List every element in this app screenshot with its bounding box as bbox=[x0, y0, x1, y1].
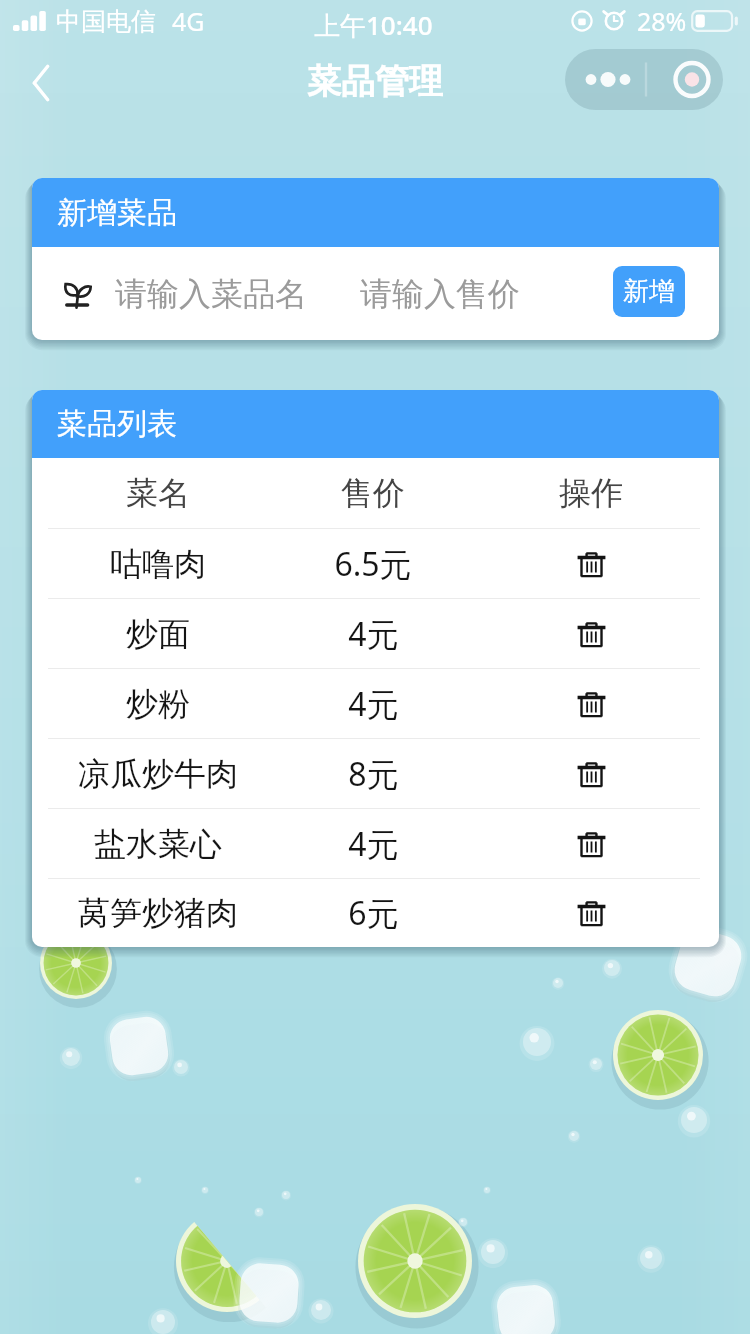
staticText: 菜品管理 bbox=[307, 60, 443, 103]
staticText: 4元 bbox=[348, 822, 399, 866]
staticText: 请输入菜品名 bbox=[115, 274, 307, 314]
staticText: 请输入售价 bbox=[360, 274, 520, 314]
staticText: 凉瓜炒牛肉 bbox=[78, 754, 238, 794]
button[interactable]: 炒面 bbox=[32, 599, 719, 668]
staticText: 4元 bbox=[348, 682, 399, 726]
staticText: 28% bbox=[637, 4, 687, 38]
staticText: 新增 bbox=[623, 275, 675, 308]
button[interactable]: Delete 炒粉 bbox=[567, 680, 615, 728]
button[interactable]: 请输入菜品名 bbox=[115, 261, 360, 327]
staticText: 中国电信 bbox=[56, 6, 156, 37]
staticText: 操作 bbox=[559, 473, 623, 513]
button[interactable]: 请输入售价 bbox=[360, 261, 590, 327]
staticText: 盐水菜心 bbox=[94, 824, 222, 864]
staticText: 菜品列表 bbox=[57, 405, 177, 443]
button[interactable]: Back bbox=[14, 58, 68, 108]
staticText: 咕噜肉 bbox=[110, 544, 206, 584]
button[interactable]: 凉瓜炒牛肉 bbox=[32, 739, 719, 808]
button[interactable]: 莴笋炒猪肉 bbox=[32, 879, 719, 947]
button[interactable]: 盐水菜心 bbox=[32, 809, 719, 878]
staticText: 4G bbox=[172, 4, 205, 38]
staticText: 4元 bbox=[348, 612, 399, 656]
button[interactable]: 炒粉 bbox=[32, 669, 719, 738]
staticText: 菜名 bbox=[126, 473, 190, 513]
button[interactable]: Delete 咕噜肉 bbox=[567, 540, 615, 588]
staticText: 上午10:40 bbox=[314, 7, 433, 43]
staticText: 莴笋炒猪肉 bbox=[78, 893, 238, 933]
staticText: 炒粉 bbox=[126, 684, 190, 724]
staticText: 新增菜品 bbox=[57, 194, 177, 232]
button[interactable]: Delete 莴笋炒猪肉 bbox=[567, 889, 615, 937]
button[interactable]: Menu bbox=[565, 49, 723, 110]
staticText: 6元 bbox=[348, 891, 399, 935]
staticText: 炒面 bbox=[126, 614, 190, 654]
staticText: 6.5元 bbox=[334, 542, 412, 586]
staticText: 售价 bbox=[341, 473, 405, 513]
button[interactable]: Delete 凉瓜炒牛肉 bbox=[567, 750, 615, 798]
button[interactable]: Delete 盐水菜心 bbox=[567, 820, 615, 868]
button[interactable]: 咕噜肉 bbox=[32, 529, 719, 598]
button[interactable]: Delete 炒面 bbox=[567, 610, 615, 658]
button[interactable]: 新增 bbox=[613, 266, 685, 317]
staticText: 8元 bbox=[348, 752, 399, 796]
